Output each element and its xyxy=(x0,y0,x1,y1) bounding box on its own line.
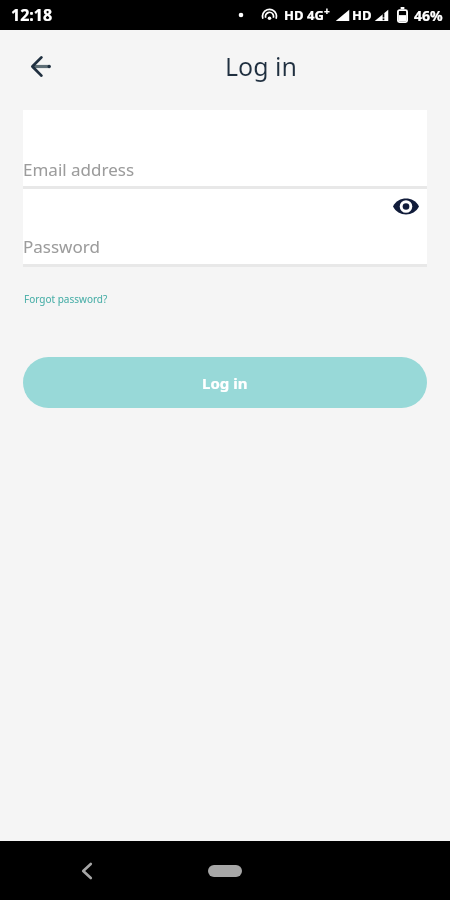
staticText: 4G xyxy=(307,6,324,24)
button[interactable]: Back xyxy=(21,46,61,86)
staticText: Log in xyxy=(225,49,298,83)
button[interactable]: Home xyxy=(208,865,242,877)
button[interactable]: Forgot password? xyxy=(22,288,114,310)
staticText: 12:18 xyxy=(11,4,53,26)
staticText: 46% xyxy=(414,6,443,25)
staticText: HD xyxy=(352,6,372,24)
staticText: Email address xyxy=(23,158,135,181)
button[interactable]: Log in xyxy=(23,357,427,408)
staticText: + xyxy=(324,4,330,18)
button[interactable]: Show password xyxy=(389,189,423,223)
button[interactable]: Password xyxy=(23,189,427,264)
button[interactable]: Email address xyxy=(23,110,427,186)
staticText: Forgot password? xyxy=(24,292,108,306)
staticText: Log in xyxy=(202,373,248,393)
staticText: HD xyxy=(284,6,304,24)
staticText: Password xyxy=(23,235,100,258)
button[interactable]: Back xyxy=(67,851,107,891)
